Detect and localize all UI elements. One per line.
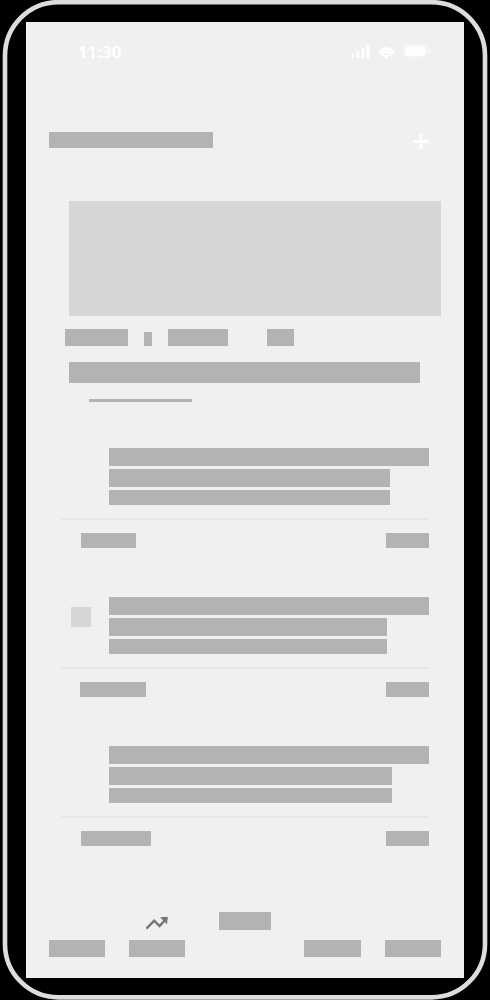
button[interactable]: Trending xyxy=(141,905,173,935)
other: Cellular signal xyxy=(351,42,373,62)
other: Wi-Fi xyxy=(378,42,398,62)
button[interactable]: List item xyxy=(49,734,441,844)
button[interactable]: List item xyxy=(49,585,441,695)
other: Battery full xyxy=(404,42,434,62)
staticText: 11:30 xyxy=(78,40,122,63)
button[interactable]: Add xyxy=(402,122,440,160)
button[interactable]: List item xyxy=(49,436,441,546)
